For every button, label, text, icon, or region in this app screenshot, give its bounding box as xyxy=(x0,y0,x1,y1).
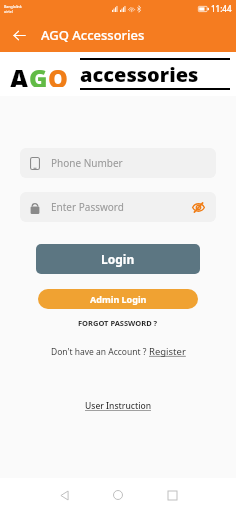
button[interactable]: Recents xyxy=(151,478,193,512)
button[interactable]: Admin Login xyxy=(38,289,198,309)
staticText: AGQ Accessories xyxy=(41,26,145,44)
staticText: airtel xyxy=(4,9,13,14)
staticText: Admin Login xyxy=(90,293,147,305)
staticText: Banglalink xyxy=(4,4,22,9)
button[interactable]: Show password xyxy=(190,199,206,215)
button[interactable]: Login xyxy=(36,244,200,274)
button[interactable]: Home xyxy=(97,478,139,512)
staticText: accessories xyxy=(80,61,199,88)
staticText: Register xyxy=(149,345,186,358)
staticText: Q xyxy=(48,61,68,87)
button[interactable]: FORGOT PASSWORD ? xyxy=(0,318,236,328)
staticText: A xyxy=(10,61,29,87)
staticText: Login xyxy=(101,251,135,267)
staticText: 11:44 xyxy=(211,3,232,14)
staticText: User Instruction xyxy=(85,400,151,412)
button[interactable]: Enter Password xyxy=(20,192,216,222)
button[interactable]: Register xyxy=(149,345,186,358)
staticText: Enter Password xyxy=(51,200,124,214)
button[interactable]: Phone Number xyxy=(20,148,216,178)
staticText: G xyxy=(29,61,48,87)
button[interactable]: User Instruction xyxy=(0,400,236,412)
button[interactable]: Back xyxy=(8,24,30,46)
button[interactable]: Back xyxy=(43,478,85,512)
staticText: Don't have an Account ? xyxy=(51,346,149,358)
staticText: Phone Number xyxy=(51,156,123,170)
staticText: FORGOT PASSWORD ? xyxy=(78,318,158,328)
